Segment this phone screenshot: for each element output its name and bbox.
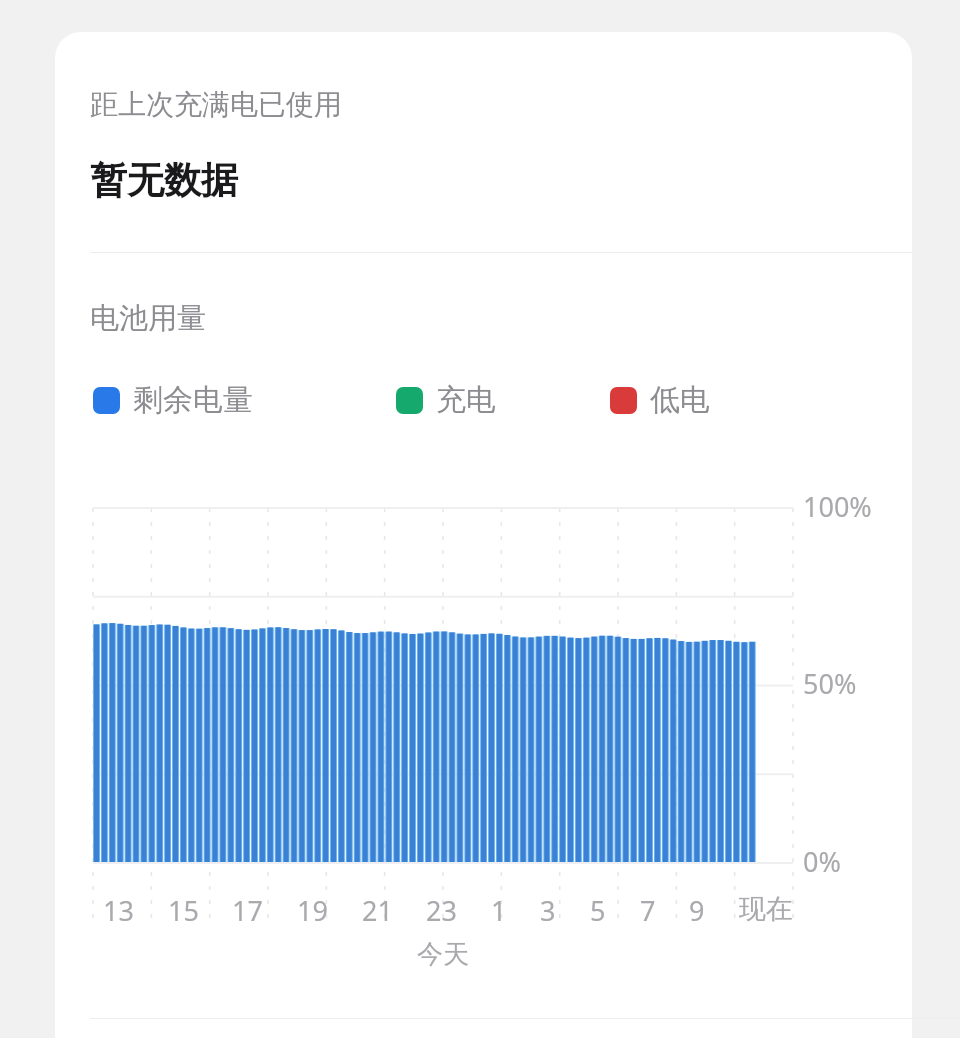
staticText: 7 <box>640 892 656 929</box>
button[interactable]: 充电 <box>396 378 496 422</box>
staticText: 23 <box>426 892 457 929</box>
button[interactable]: 低电 <box>610 378 710 422</box>
staticText: 充电 <box>436 381 496 419</box>
staticText: 1 <box>491 892 507 929</box>
staticText: 3 <box>540 892 556 929</box>
staticText: 暂无数据 <box>90 157 238 204</box>
staticText: 19 <box>297 892 328 929</box>
staticText: 100% <box>803 488 872 525</box>
staticText: 现在 <box>739 892 793 926</box>
staticText: 13 <box>103 892 134 929</box>
other: 电池用量图表 <box>0 480 960 900</box>
staticText: 15 <box>168 892 199 929</box>
button[interactable]: 剩余电量 <box>93 378 253 422</box>
staticText: 5 <box>590 892 606 929</box>
staticText: 9 <box>689 892 705 929</box>
staticText: 17 <box>232 892 263 929</box>
button[interactable]: 距上次充满电已使用 <box>55 32 912 252</box>
staticText: 21 <box>362 892 393 929</box>
staticText: 距上次充满电已使用 <box>90 87 342 122</box>
staticText: 0% <box>803 843 841 880</box>
staticText: 低电 <box>650 381 710 419</box>
staticText: 今天 <box>93 938 793 971</box>
staticText: 电池用量 <box>90 300 206 337</box>
staticText: 50% <box>803 665 857 702</box>
staticText: 剩余电量 <box>133 381 253 419</box>
